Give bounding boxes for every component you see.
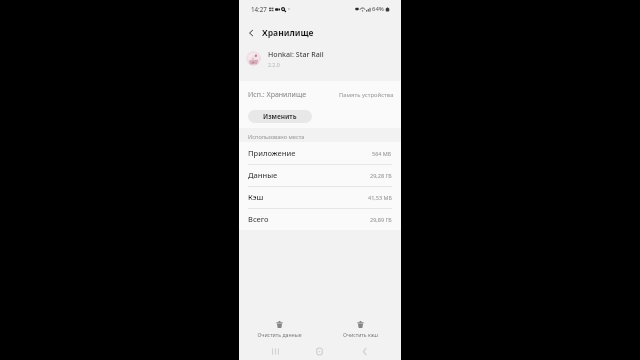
staticText: Всего [248,214,269,224]
button[interactable]: Home [297,341,342,360]
staticText: 29,89 ГБ [370,216,392,223]
staticText: Очистить данные [257,331,302,338]
button[interactable]: Приложение [239,142,401,164]
staticText: Использовано места [248,133,305,141]
staticText: 29,28 ГБ [370,172,392,179]
staticText: 564 МБ [372,150,392,157]
button[interactable]: Back [244,26,258,40]
staticText: Исп.: Хранилище [248,90,307,100]
button[interactable]: Данные [239,164,401,186]
staticText: Изменить [263,112,297,121]
staticText: Кэш [248,192,264,202]
button[interactable]: Recents [253,341,297,360]
staticText: Очистить кэш [343,331,378,338]
staticText: Хранилище [262,27,314,39]
staticText: Приложение [248,148,296,158]
staticText: 2.2.0 [268,61,280,68]
staticText: 64% [372,5,384,13]
staticText: 14:27 [251,5,267,13]
staticText: Память устройства [339,91,394,99]
button[interactable]: Очистить данные [239,316,320,343]
button[interactable]: Всего [239,208,401,230]
button[interactable]: Очистить кэш [320,316,401,343]
staticText: Honkai: Star Rail [268,49,324,59]
button[interactable]: Кэш [239,186,401,208]
button[interactable]: Изменить [248,110,312,123]
button[interactable]: Back [342,341,387,360]
staticText: Данные [248,170,278,180]
staticText: 41,53 МБ [368,194,392,201]
